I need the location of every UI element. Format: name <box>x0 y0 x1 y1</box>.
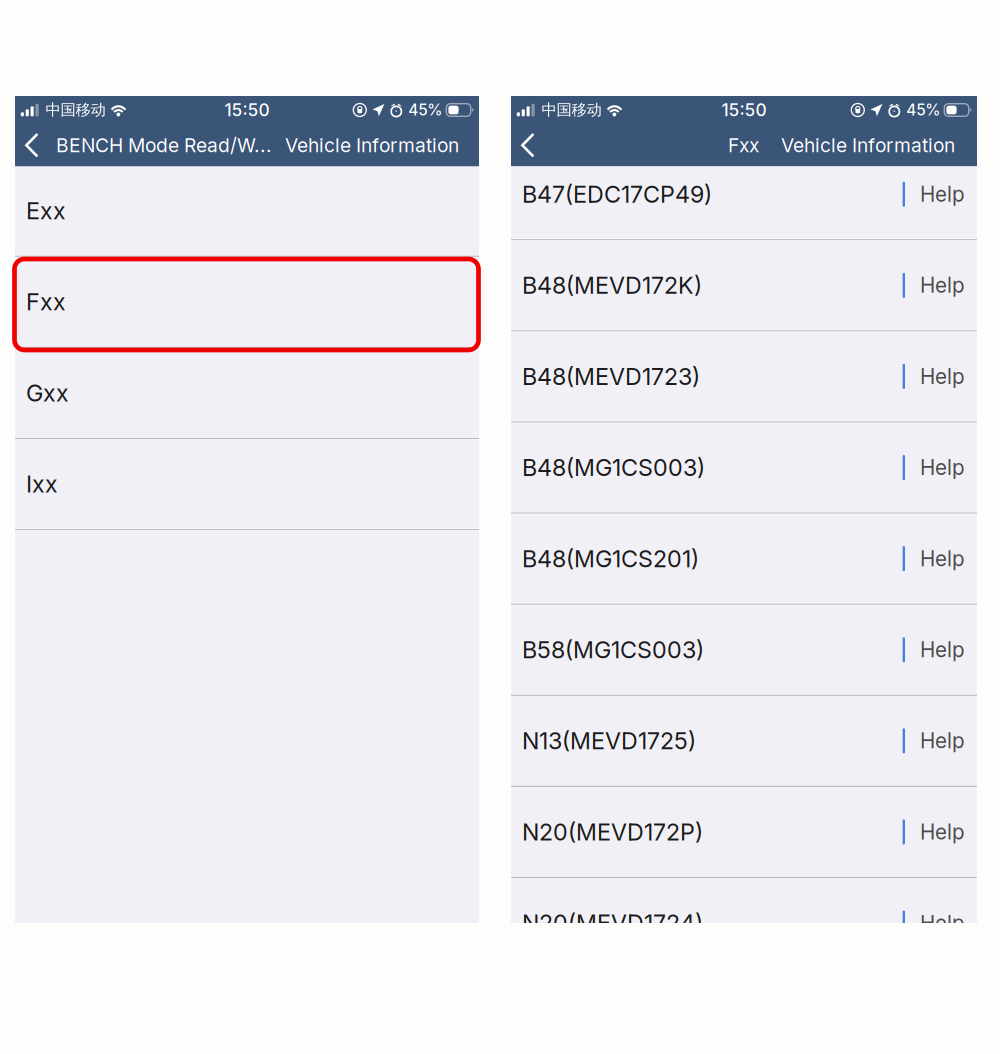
staticText: Help <box>920 910 965 935</box>
button[interactable]: Back <box>511 124 545 166</box>
button[interactable]: N13(MEVD1725) <box>511 697 977 785</box>
staticText: Vehicle Information <box>781 134 955 157</box>
staticText: Help <box>920 273 965 298</box>
staticText: B48(MG1CS003) <box>522 453 705 482</box>
button[interactable]: B48(MEVD172K) <box>511 241 977 330</box>
staticText: 中国移动 <box>45 100 105 120</box>
staticText: Vehicle Information <box>285 134 459 157</box>
staticText: Help <box>920 364 965 389</box>
staticText: 45% <box>906 101 940 119</box>
staticText: N13(MEVD1725) <box>522 727 696 755</box>
button[interactable]: B48(MEVD1723) <box>511 332 977 421</box>
staticText: Fxx <box>26 288 66 316</box>
staticText: B48(MG1CS201) <box>522 544 699 573</box>
button[interactable]: Back <box>15 124 49 166</box>
button[interactable]: B48(MG1CS003) <box>511 423 977 512</box>
button[interactable]: B47(EDC17CP49) <box>511 150 977 238</box>
staticText: Help <box>920 819 965 844</box>
staticText: B48(MEVD1723) <box>522 362 700 390</box>
staticText: BENCH Mode Read/W... <box>56 134 272 157</box>
staticText: Help <box>920 637 965 662</box>
staticText: 15:50 <box>224 99 269 120</box>
staticText: N20(MEVD172P) <box>522 818 703 846</box>
button[interactable]: Ixx <box>15 440 479 528</box>
staticText: Exx <box>26 197 66 225</box>
button[interactable]: B48(MG1CS201) <box>511 514 977 603</box>
staticText: Fxx <box>728 134 759 157</box>
button[interactable]: Exx <box>15 166 479 255</box>
staticText: 15:50 <box>721 99 766 120</box>
staticText: 45% <box>408 101 442 119</box>
staticText: N20(MEVD1724) <box>522 909 703 937</box>
staticText: Help <box>920 182 965 207</box>
staticText: Gxx <box>26 379 69 407</box>
button[interactable]: N20(MEVD1724) <box>511 879 977 967</box>
staticText: Help <box>920 546 965 571</box>
staticText: B58(MG1CS003) <box>522 636 704 664</box>
button[interactable]: Gxx <box>15 349 479 437</box>
staticText: Ixx <box>26 470 58 498</box>
staticText: B47(EDC17CP49) <box>522 180 712 208</box>
staticText: Help <box>920 728 965 753</box>
staticText: Help <box>920 455 965 480</box>
staticText: B48(MEVD172K) <box>522 271 702 299</box>
button[interactable]: N20(MEVD172P) <box>511 788 977 876</box>
button[interactable]: Fxx <box>15 258 479 346</box>
button[interactable]: B58(MG1CS003) <box>511 605 977 694</box>
staticText: 中国移动 <box>541 100 601 120</box>
